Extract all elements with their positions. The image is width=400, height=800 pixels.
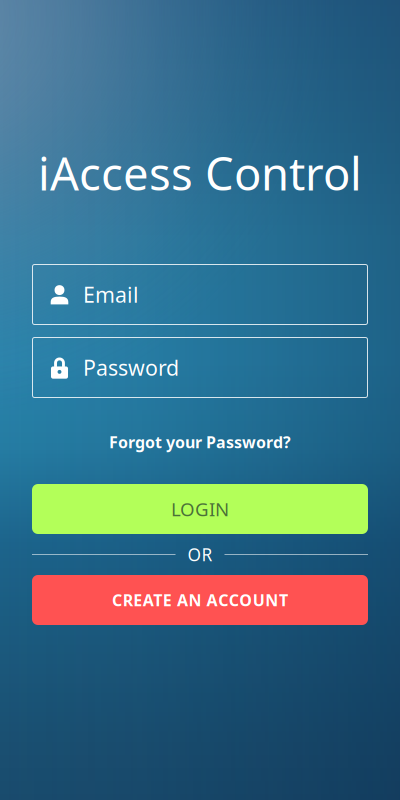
button[interactable]: CREATE AN ACCOUNT <box>32 575 368 625</box>
button[interactable]: Email <box>32 264 368 325</box>
staticText: Forgot your Password? <box>109 431 291 453</box>
button[interactable]: LOGIN <box>32 484 368 534</box>
button[interactable]: Forgot your Password? <box>32 429 368 455</box>
staticText: CREATE AN ACCOUNT <box>112 589 288 611</box>
staticText: OR <box>187 543 212 566</box>
staticText: Email <box>83 280 139 309</box>
staticText: Password <box>83 353 179 382</box>
button[interactable]: Password <box>32 337 368 398</box>
staticText: LOGIN <box>171 497 229 521</box>
staticText: iAccess Control <box>38 143 362 203</box>
